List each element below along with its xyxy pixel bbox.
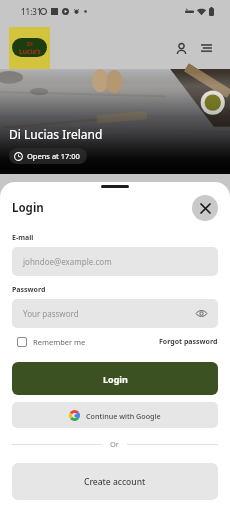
button[interactable]: Account: [170, 37, 192, 59]
other: Show password: [196, 308, 207, 319]
button[interactable]: Remember me: [12, 335, 86, 349]
button[interactable]: Menu: [195, 37, 217, 59]
button[interactable]: Di Lucia's home: [9, 27, 50, 69]
staticText: Di Lucias Ireland: [9, 126, 103, 142]
button[interactable]: Opens at 17:00: [9, 148, 87, 164]
button[interactable]: Your password: [12, 299, 218, 328]
staticText: Login: [103, 373, 128, 385]
staticText: 11:31: [21, 6, 42, 17]
staticText: Or: [110, 439, 119, 449]
staticText: Remember me: [33, 337, 86, 347]
staticText: Create account: [84, 476, 146, 488]
staticText: Lucia's: [19, 47, 41, 56]
button[interactable]: johndoe@example.com: [12, 247, 218, 276]
button[interactable]: Login: [12, 362, 218, 395]
button[interactable]: Forgot password: [159, 335, 218, 349]
staticText: johndoe@example.com: [23, 256, 112, 267]
staticText: E-mail: [12, 233, 34, 243]
staticText: Continue with Google: [86, 411, 161, 421]
button[interactable]: Close: [192, 195, 218, 221]
button[interactable]: Continue with Google: [12, 402, 218, 428]
button[interactable]: Create account: [12, 463, 218, 500]
staticText: Login: [12, 200, 44, 216]
staticText: Forgot password: [159, 337, 218, 347]
staticText: Password: [12, 285, 46, 295]
staticText: Opens at 17:00: [27, 151, 80, 161]
staticText: Di: [27, 40, 33, 47]
staticText: Your password: [23, 308, 79, 319]
